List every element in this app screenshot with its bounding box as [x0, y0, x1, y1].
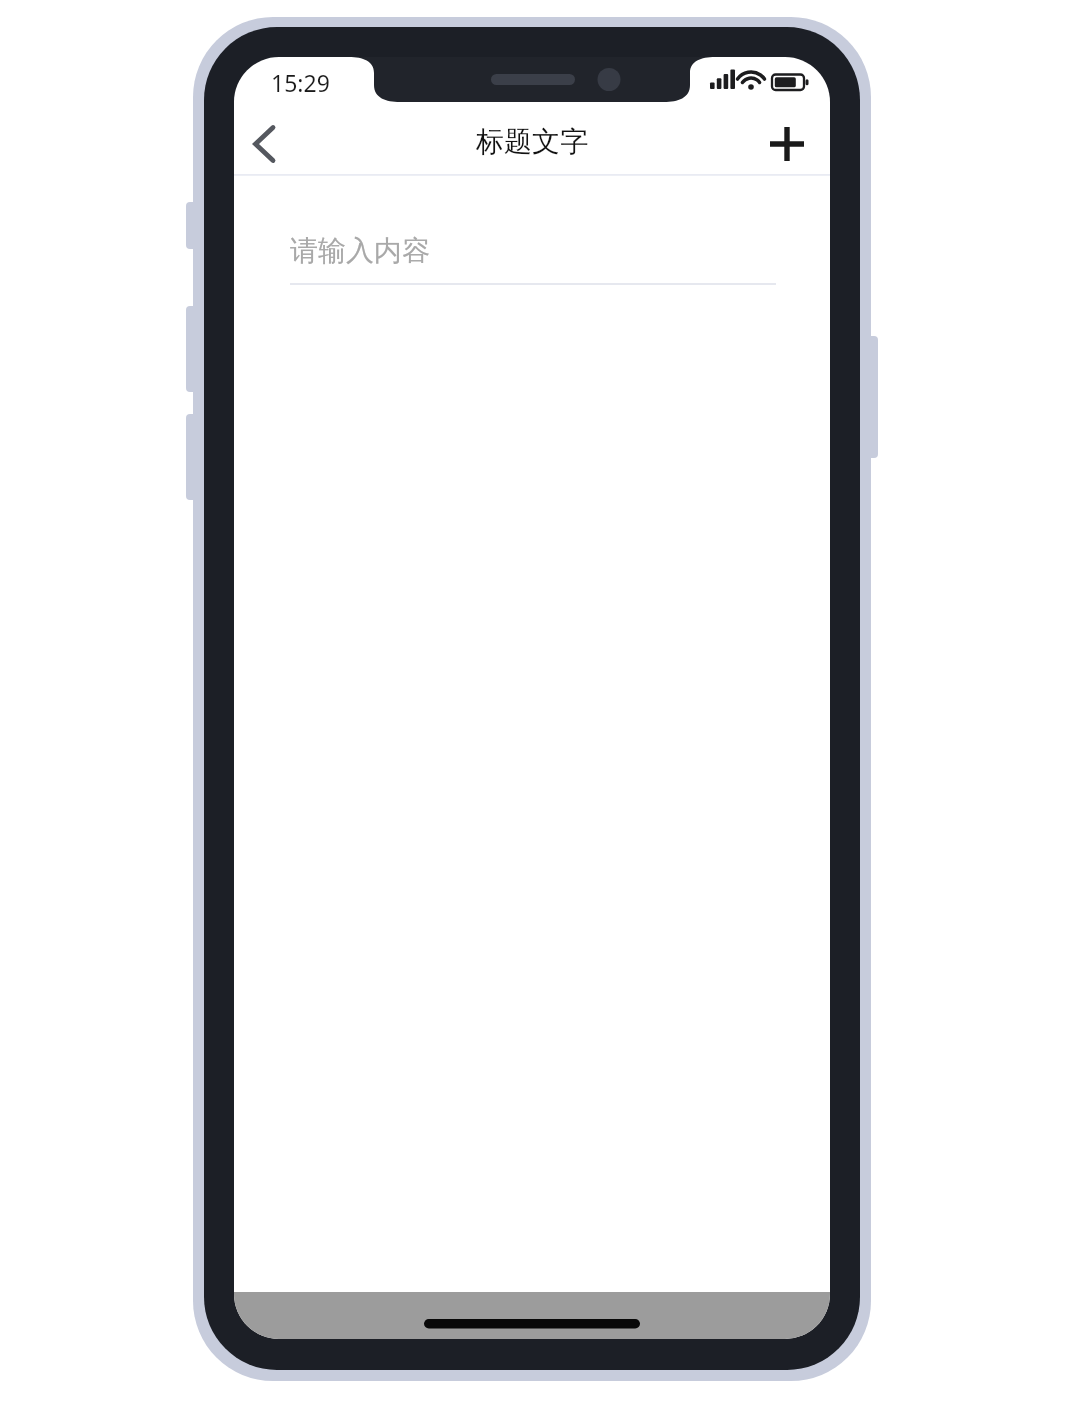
staticText: 请输入内容 [290, 233, 430, 268]
staticText: 标题文字 [476, 124, 588, 159]
button[interactable]: Back [236, 115, 296, 173]
button[interactable] [290, 217, 776, 285]
staticText: 15:29 [271, 67, 330, 98]
button[interactable]: Add [758, 115, 818, 173]
